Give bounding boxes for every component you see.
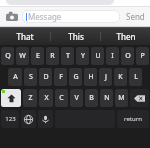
staticText: Y xyxy=(81,51,85,61)
button[interactable]: L xyxy=(129,68,142,86)
button[interactable]: This xyxy=(51,27,100,45)
staticText: K xyxy=(118,72,123,82)
staticText: This xyxy=(68,31,84,42)
staticText: I xyxy=(111,51,114,61)
button[interactable]: Y xyxy=(76,47,89,65)
staticText: Q xyxy=(5,51,11,61)
staticText: P xyxy=(140,51,145,61)
staticText: X xyxy=(44,93,49,103)
button[interactable]: P xyxy=(136,47,149,65)
staticText: V xyxy=(74,93,79,103)
staticText: R xyxy=(50,51,55,61)
button[interactable]: U xyxy=(91,47,104,65)
staticText: N xyxy=(104,93,110,103)
staticText: A xyxy=(13,72,18,82)
button[interactable]: E xyxy=(31,47,44,65)
staticText: U xyxy=(95,51,101,61)
button[interactable]: O xyxy=(121,47,134,65)
staticText: G xyxy=(73,72,79,82)
staticText: Message xyxy=(28,11,62,22)
staticText: Z xyxy=(28,93,33,103)
staticText: 123 xyxy=(5,115,16,123)
staticText: J xyxy=(105,72,107,82)
button[interactable]: V xyxy=(70,89,83,107)
staticText: D xyxy=(43,72,49,82)
button[interactable]: M xyxy=(115,89,128,107)
button[interactable]: Backspace xyxy=(130,89,149,107)
button[interactable]: return xyxy=(117,110,149,128)
button[interactable]: K xyxy=(114,68,127,86)
button[interactable]: J xyxy=(99,68,112,86)
staticText: W xyxy=(19,51,26,61)
button[interactable]: Then xyxy=(101,27,150,45)
button[interactable]: I xyxy=(106,47,119,65)
button[interactable]: F xyxy=(54,68,67,86)
staticText: M xyxy=(118,93,125,103)
button[interactable]: R xyxy=(46,47,59,65)
button[interactable]: T xyxy=(61,47,74,65)
staticText: C xyxy=(59,93,64,103)
staticText: S xyxy=(29,72,33,82)
staticText: L xyxy=(134,72,138,82)
staticText: F xyxy=(59,72,63,82)
button[interactable]: Message xyxy=(22,10,120,23)
button[interactable]: S xyxy=(24,68,37,86)
staticText: Send xyxy=(126,11,145,22)
button[interactable]: 123 xyxy=(1,110,19,128)
staticText: B xyxy=(89,93,94,103)
staticText: Then xyxy=(116,31,136,42)
button[interactable]: Z xyxy=(23,89,37,107)
staticText: T xyxy=(66,51,70,61)
button[interactable]: X xyxy=(39,89,53,107)
staticText: That xyxy=(16,31,34,42)
button[interactable]: B xyxy=(85,89,98,107)
button[interactable]: G xyxy=(69,68,82,86)
button[interactable]: Send xyxy=(124,9,147,24)
button[interactable]: Shift xyxy=(1,89,21,107)
button[interactable]: Q xyxy=(1,47,14,65)
button[interactable]: Change keyboard xyxy=(21,110,36,128)
staticText: E xyxy=(36,51,40,61)
button[interactable]: H xyxy=(84,68,97,86)
button[interactable]: That xyxy=(0,27,50,45)
staticText: return xyxy=(124,115,142,123)
button[interactable]: W xyxy=(16,47,29,65)
button[interactable]: Dictate xyxy=(38,110,53,128)
button[interactable]: Camera xyxy=(4,9,19,24)
button[interactable]: D xyxy=(39,68,52,86)
staticText: O xyxy=(125,51,131,61)
button[interactable]: N xyxy=(100,89,113,107)
staticText: H xyxy=(88,72,94,82)
button[interactable]: C xyxy=(55,89,68,107)
button[interactable]: A xyxy=(8,68,22,86)
